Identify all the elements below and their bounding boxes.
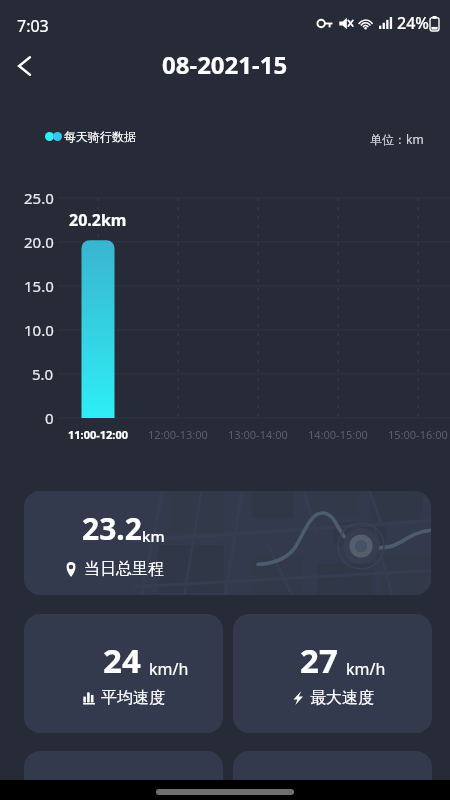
staticText: 平均速度: [101, 688, 165, 708]
staticText: 每天骑行数据: [64, 129, 136, 144]
staticText: 20.2km: [69, 209, 127, 231]
staticText: 最大速度: [310, 688, 374, 708]
staticText: 10.0: [24, 320, 54, 340]
staticText: km/h: [149, 658, 189, 680]
staticText: 5.0: [32, 364, 54, 384]
staticText: 当日总里程: [84, 559, 164, 579]
button[interactable]: 27: [233, 614, 432, 733]
staticText: 单位：km: [370, 131, 424, 147]
staticText: 15.0: [24, 276, 54, 296]
staticText: 11:00-12:00: [68, 427, 129, 442]
staticText: 12:00-13:00: [148, 427, 208, 442]
button[interactable]: [233, 751, 432, 800]
staticText: km: [142, 526, 165, 546]
staticText: 14:00-15:00: [308, 427, 368, 442]
staticText: 24: [103, 638, 141, 683]
staticText: 15:00-16:00: [388, 427, 448, 442]
button[interactable]: Back: [1, 43, 47, 89]
staticText: 24%: [397, 12, 429, 34]
button[interactable]: [24, 751, 223, 800]
staticText: 0: [45, 408, 54, 428]
staticText: 27: [300, 638, 338, 683]
staticText: 25.0: [24, 188, 54, 208]
button[interactable]: 23.2: [24, 491, 431, 595]
staticText: 23.2: [82, 508, 142, 549]
staticText: 13:00-14:00: [228, 427, 288, 442]
staticText: km/h: [346, 658, 386, 680]
button[interactable]: 24: [24, 614, 223, 733]
staticText: 7:03: [17, 15, 49, 37]
staticText: 20.0: [24, 232, 54, 252]
staticText: 08-2021-15: [162, 48, 288, 81]
